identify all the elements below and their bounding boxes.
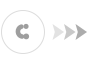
button[interactable]: Call xyxy=(0,9,46,55)
